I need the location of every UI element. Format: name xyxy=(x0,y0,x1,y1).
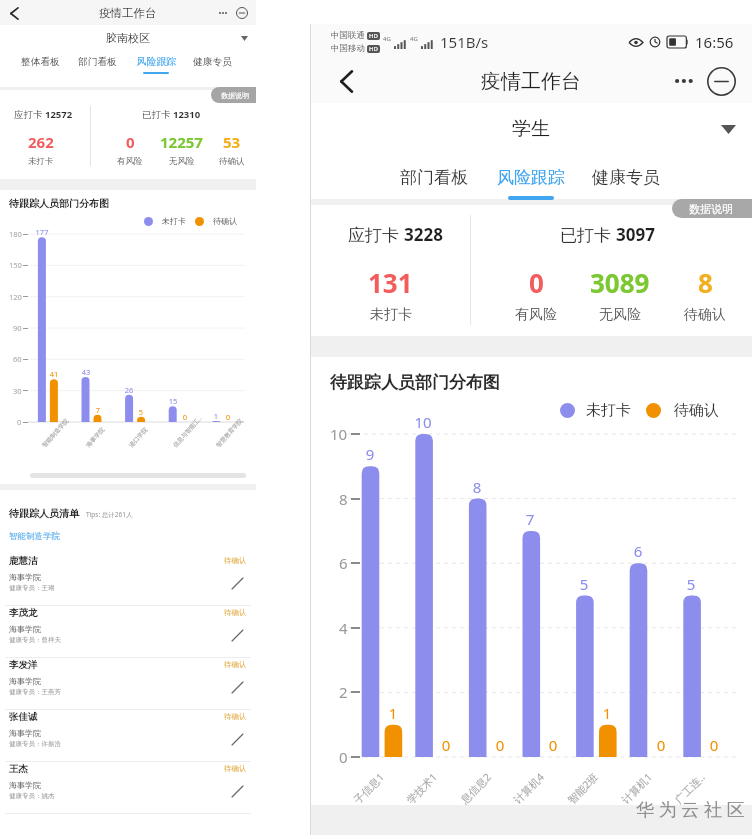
button[interactable]: 王杰 xyxy=(0,762,256,814)
staticText: 1 xyxy=(375,703,411,723)
staticText: 151B/s xyxy=(440,32,489,52)
staticText: 数据说明 xyxy=(221,91,249,100)
staticText: 53 xyxy=(223,132,241,152)
staticText: 待跟踪人员部门分布图 xyxy=(9,197,109,210)
staticText: 智能制造学院 xyxy=(9,531,60,542)
button[interactable]: 风险跟踪 xyxy=(130,55,182,75)
staticText: 9 xyxy=(352,444,388,464)
staticText: 无风险 xyxy=(169,156,195,167)
staticText: 3228 xyxy=(404,223,443,246)
staticText: 未打卡 xyxy=(370,306,412,324)
button[interactable]: 学生 xyxy=(310,103,752,155)
staticText: 8 xyxy=(698,265,713,300)
staticText: 智能2班 xyxy=(564,765,605,806)
staticText: 12257 xyxy=(160,132,203,152)
staticText: 风险跟踪 xyxy=(137,56,176,68)
staticText: 未打卡 xyxy=(586,401,631,420)
staticText: 计算机1 xyxy=(618,765,659,806)
staticText: 未打卡 xyxy=(28,156,54,167)
staticText: 胶南校区 xyxy=(106,31,150,45)
staticText: 待确认 xyxy=(224,764,247,773)
staticText: 健康专员 xyxy=(193,56,232,68)
staticText: 海事学院 xyxy=(9,728,41,738)
button[interactable]: Edit xyxy=(231,629,244,642)
staticText: 待确认 xyxy=(684,306,726,324)
staticText: 8 xyxy=(459,477,495,497)
staticText: 2 xyxy=(339,682,348,702)
staticText: 学技术1 xyxy=(403,765,444,806)
staticText: 0 xyxy=(17,417,22,427)
button[interactable]: 李发洋 xyxy=(0,658,256,710)
staticText: 120 xyxy=(9,292,22,302)
staticText: 5 xyxy=(566,574,602,594)
staticText: 信息与智能工.. xyxy=(171,411,207,449)
button[interactable]: 风险跟踪 xyxy=(486,165,576,202)
staticText: 60 xyxy=(13,354,22,364)
staticText: HD xyxy=(369,32,378,40)
staticText: 计算机4 xyxy=(510,765,551,806)
staticText: 部门看板 xyxy=(78,56,117,68)
staticText: 4G xyxy=(383,35,391,43)
button[interactable]: Back xyxy=(5,4,23,22)
staticText: 177 xyxy=(29,227,55,237)
button[interactable]: 部门看板 xyxy=(389,165,479,202)
staticText: 12310 xyxy=(173,108,201,121)
staticText: 0 xyxy=(339,747,348,767)
staticText: 整体看板 xyxy=(21,56,60,68)
staticText: 智慧教育学院 xyxy=(214,411,250,449)
staticText: 已打卡 xyxy=(560,223,616,246)
staticText: 0 xyxy=(126,132,135,152)
staticText: 有风险 xyxy=(515,306,557,324)
staticText: 131 xyxy=(368,265,413,300)
button[interactable]: 整体看板 xyxy=(14,55,66,75)
button[interactable]: 胶南校区 xyxy=(0,25,256,51)
staticText: 待跟踪人员清单 xyxy=(9,507,79,520)
staticText: 息信息2 xyxy=(457,765,498,806)
staticText: 262 xyxy=(28,132,54,152)
staticText: 8 xyxy=(339,489,348,509)
staticText: 健康专员：曾祥天 xyxy=(9,636,61,644)
button[interactable]: Close xyxy=(704,64,738,98)
staticText: 学生 xyxy=(512,117,550,141)
staticText: 6 xyxy=(620,541,656,561)
button[interactable]: Edit xyxy=(231,681,244,694)
staticText: 30 xyxy=(13,386,22,396)
button[interactable]: 数据说明 xyxy=(211,87,266,103)
staticText: 港口学院 xyxy=(127,411,163,449)
button[interactable]: 鹿慧洁 xyxy=(0,554,256,606)
button[interactable]: 李茂龙 xyxy=(0,606,256,658)
button[interactable]: More xyxy=(215,5,231,21)
button[interactable]: Close xyxy=(234,5,250,21)
staticText: 华 为 云 社 区 xyxy=(636,797,745,822)
staticText: 待确认 xyxy=(224,660,247,669)
button[interactable]: 部门看板 xyxy=(71,55,123,75)
staticText: 待确认 xyxy=(224,556,247,565)
button[interactable]: Edit xyxy=(231,785,244,798)
button[interactable]: 张佳诚 xyxy=(0,710,256,762)
staticText: HD xyxy=(369,45,378,53)
staticText: 0 xyxy=(172,412,198,422)
staticText: 中国联通 xyxy=(331,30,365,41)
button[interactable]: 数据说明 xyxy=(672,199,752,218)
staticText: 疫情工作台 xyxy=(481,69,581,94)
button[interactable]: Back xyxy=(330,65,362,97)
staticText: 0 xyxy=(482,735,518,755)
staticText: 张佳诚 xyxy=(9,711,38,723)
button[interactable]: 健康专员 xyxy=(581,165,671,202)
staticText: 180 xyxy=(9,229,22,239)
button[interactable]: Edit xyxy=(231,577,244,590)
staticText: 1 xyxy=(589,703,625,723)
staticText: Tips: 总计261人 xyxy=(86,510,133,519)
staticText: 5 xyxy=(673,574,709,594)
button[interactable]: More xyxy=(668,65,700,97)
staticText: 5 xyxy=(128,407,154,417)
staticText: 部门看板 xyxy=(400,167,468,188)
button[interactable]: 健康专员 xyxy=(186,55,238,75)
button[interactable]: Edit xyxy=(231,733,244,746)
staticText: 有风险 xyxy=(117,156,143,167)
staticText: 健康专员：姚杰 xyxy=(9,792,55,800)
staticText: 3089 xyxy=(590,265,650,300)
staticText: 健康专员：王瑚 xyxy=(9,584,55,592)
staticText: 子信息1 xyxy=(350,765,391,806)
staticText: 1 xyxy=(203,411,229,421)
